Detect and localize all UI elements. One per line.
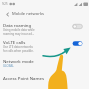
staticText: VoLTE calls bbox=[3, 39, 26, 45]
staticText: Network mode bbox=[3, 58, 34, 64]
staticText: 9:25 bbox=[2, 2, 8, 6]
button[interactable]: Network mode bbox=[0, 58, 89, 68]
staticText: Mobile networks bbox=[12, 11, 45, 17]
button[interactable]: Toggle bbox=[72, 39, 83, 48]
staticText: Data roaming bbox=[3, 22, 32, 28]
button[interactable]: Back bbox=[3, 10, 11, 18]
staticText: Using mobile data while roaming may incu… bbox=[3, 28, 35, 36]
button[interactable]: Toggle bbox=[72, 22, 83, 31]
staticText: GLOBAL bbox=[3, 64, 35, 68]
button[interactable]: Data roaming bbox=[0, 22, 89, 36]
staticText: Access Point Names bbox=[3, 75, 45, 81]
button[interactable]: Access Point Names bbox=[0, 75, 89, 81]
staticText: Use LTE data networks for calls when pos… bbox=[3, 45, 35, 53]
button[interactable]: VoLTE calls bbox=[0, 39, 89, 53]
